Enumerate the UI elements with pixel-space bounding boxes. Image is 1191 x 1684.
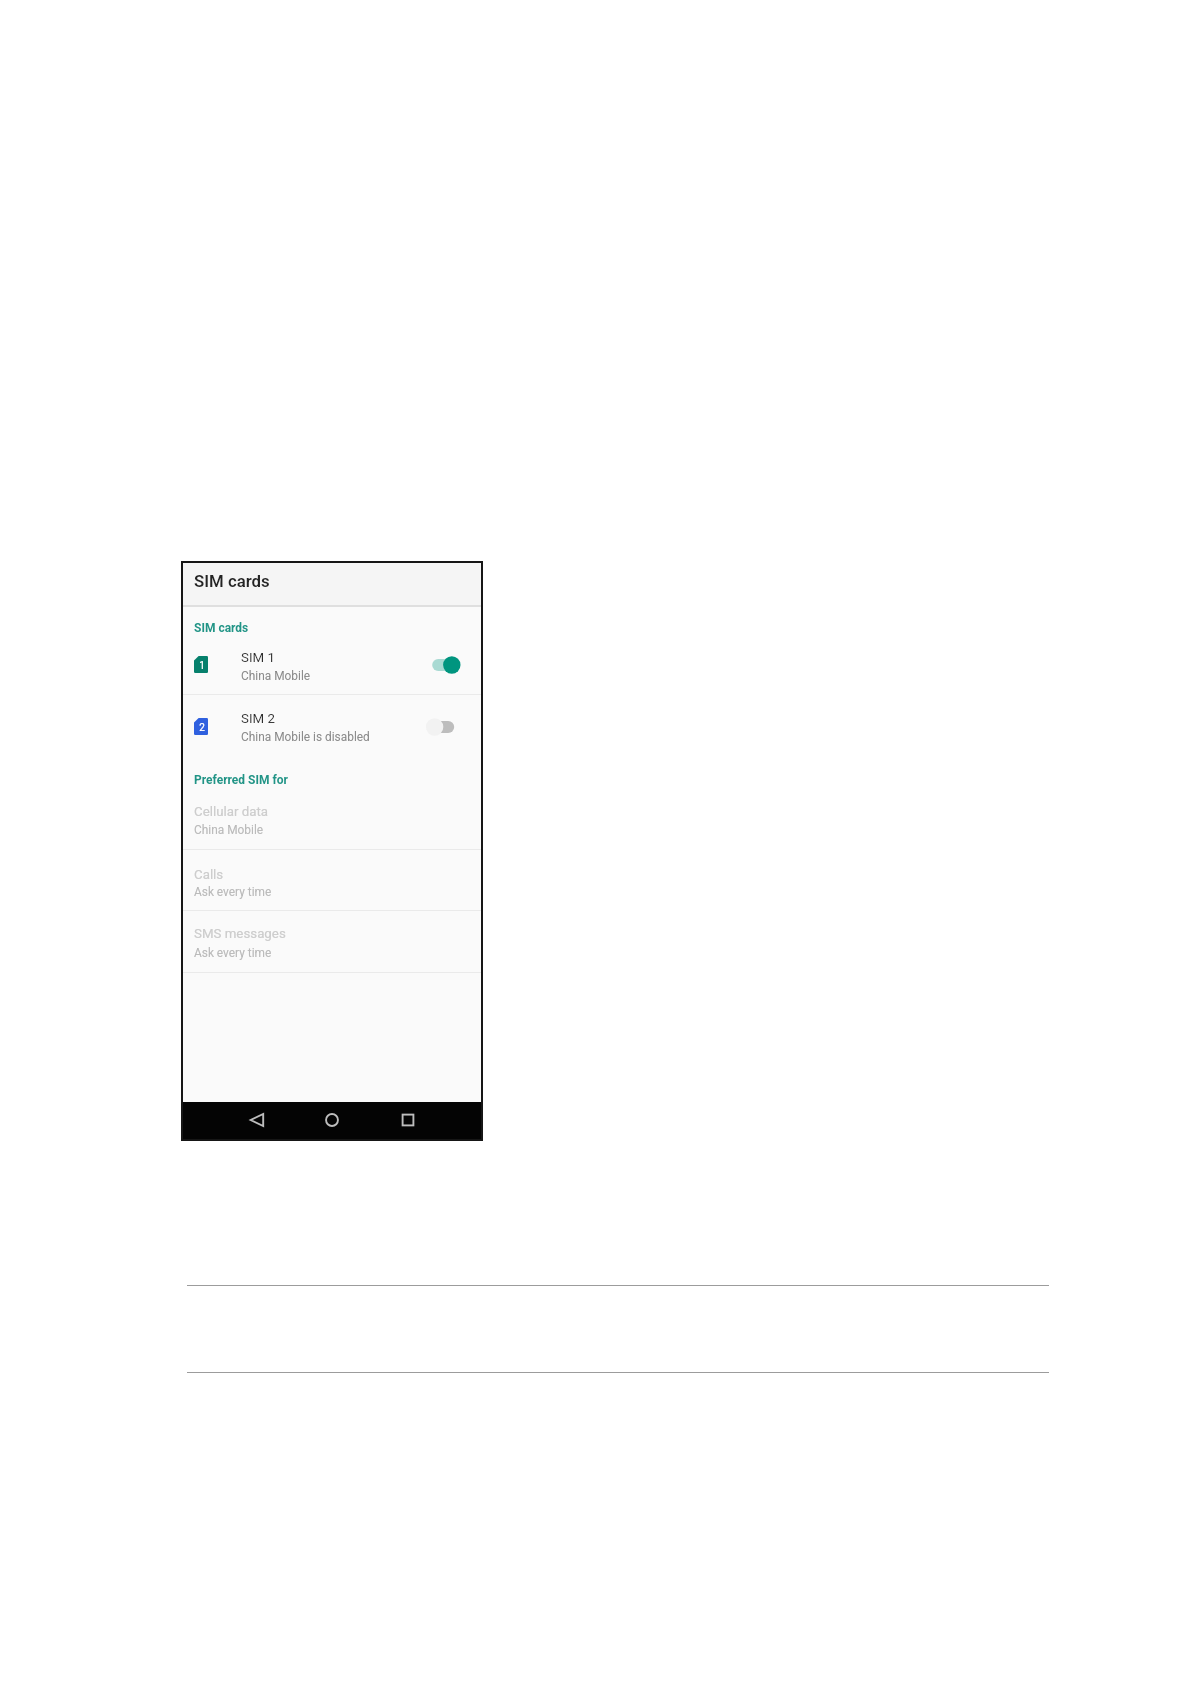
staticText: China Mobile is disabled	[241, 730, 370, 744]
button[interactable]: SIM enabled	[426, 655, 461, 675]
button[interactable]: Cellular data	[183, 793, 481, 849]
button[interactable]: SIM disabled	[426, 717, 461, 737]
button[interactable]: SIM cards	[183, 563, 481, 605]
button[interactable]: Calls	[183, 850, 481, 910]
staticText: SMS messages	[194, 926, 286, 942]
button[interactable]: Home	[317, 1105, 347, 1135]
button[interactable]: Recents	[393, 1105, 423, 1135]
staticText: Ask every time	[194, 946, 272, 960]
staticText: SIM cards	[194, 571, 270, 591]
staticText: China Mobile	[194, 823, 264, 837]
button[interactable]: Back	[242, 1105, 272, 1135]
staticText: SIM 1	[241, 650, 275, 666]
staticText: 2	[199, 722, 205, 734]
button[interactable]: 1	[183, 626, 481, 694]
staticText: 1	[199, 660, 205, 672]
staticText: Cellular data	[194, 804, 269, 820]
staticText: SIM cards	[194, 621, 249, 635]
staticText: Calls	[194, 867, 224, 883]
staticText: Ask every time	[194, 885, 272, 899]
staticText: Preferred SIM for	[194, 773, 288, 787]
staticText: China Mobile	[241, 669, 311, 683]
button[interactable]: 2	[183, 696, 481, 760]
staticText: SIM 2	[241, 711, 275, 727]
button[interactable]: SMS messages	[183, 911, 481, 971]
